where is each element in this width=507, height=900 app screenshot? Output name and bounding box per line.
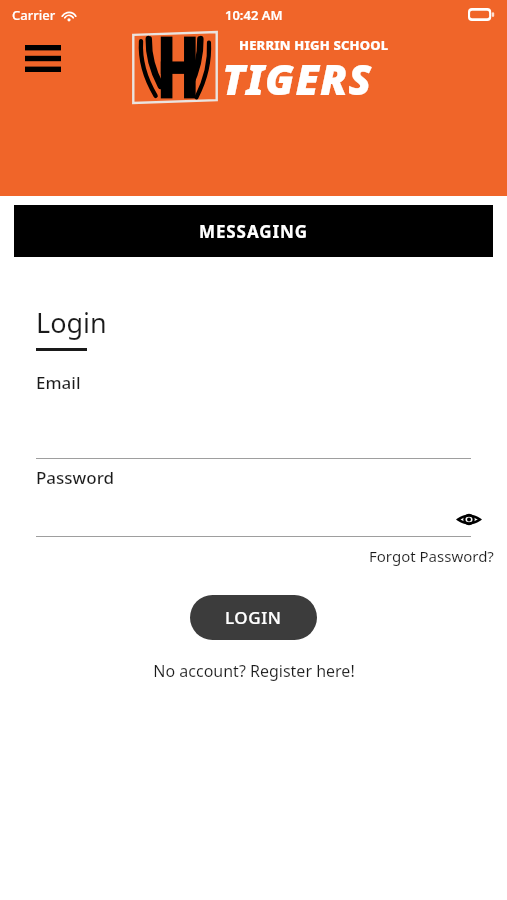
staticText: No account? Register here! [153,660,355,682]
staticText: Password [36,466,115,489]
button[interactable]: Open navigation menu [17,36,68,80]
staticText: Carrier [12,6,56,24]
button[interactable]: MESSAGING [14,205,493,257]
staticText: Email [36,371,81,394]
staticText: HERRIN HIGH SCHOOL [239,36,389,54]
button[interactable]: Forgot Password? [369,546,494,566]
staticText: Login [36,304,107,341]
staticText: MESSAGING [199,220,308,243]
button[interactable]: Email field [36,433,471,459]
button[interactable]: LOGIN [190,595,317,640]
button[interactable]: Show password [453,503,485,535]
staticText: TIGERS [222,50,373,107]
button[interactable]: No account? Register here! [153,660,355,682]
staticText: 10:42 AM [225,6,283,24]
staticText: LOGIN [225,606,282,629]
